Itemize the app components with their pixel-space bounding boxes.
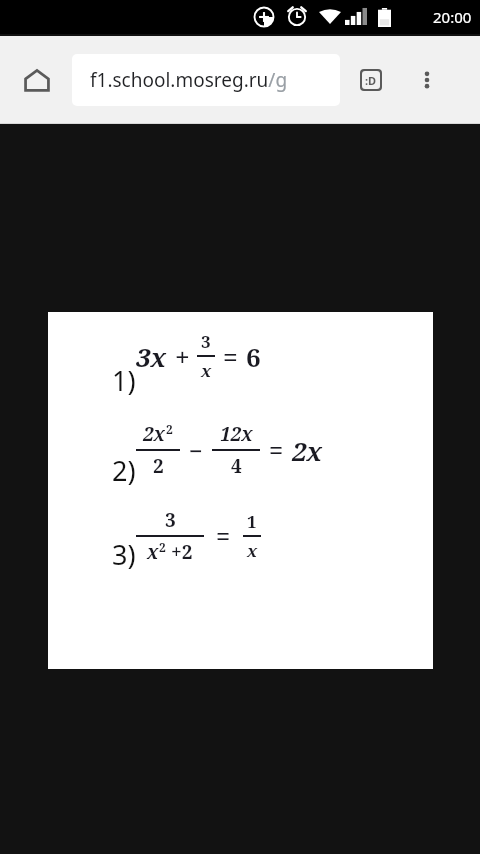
staticText: 12x bbox=[220, 421, 253, 447]
staticText: +2 bbox=[166, 539, 193, 565]
staticText: 6 bbox=[246, 339, 261, 374]
staticText: 2 bbox=[153, 453, 164, 479]
button[interactable]: Reader mode bbox=[347, 56, 395, 104]
staticText: 3 bbox=[201, 330, 211, 353]
staticText: = bbox=[216, 519, 231, 553]
staticText: x bbox=[247, 539, 258, 562]
button[interactable]: 1) bbox=[48, 312, 433, 669]
staticText: :D bbox=[365, 73, 377, 88]
staticText: 2 bbox=[159, 539, 166, 555]
staticText: = bbox=[223, 339, 238, 374]
staticText: = bbox=[269, 433, 284, 467]
staticText: 1 bbox=[247, 510, 257, 533]
staticText: 2x bbox=[292, 433, 323, 468]
staticText: + bbox=[175, 339, 190, 374]
staticText: x bbox=[201, 359, 212, 382]
staticText: 2) bbox=[112, 452, 136, 489]
staticText: 20:00 bbox=[433, 7, 472, 27]
staticText: − bbox=[189, 434, 203, 467]
staticText: f1.school.mosreg.ru/g bbox=[90, 67, 288, 93]
staticText: 3 bbox=[165, 507, 176, 533]
staticText: 3) bbox=[112, 536, 136, 573]
staticText: 3x bbox=[136, 339, 167, 374]
button[interactable]: More options bbox=[403, 56, 451, 104]
staticText: 1) bbox=[112, 362, 136, 399]
button[interactable]: Home bbox=[13, 56, 61, 104]
button[interactable]: f1.school.mosreg.ru/g bbox=[72, 54, 340, 106]
staticText: x bbox=[147, 539, 159, 565]
staticText: 2 bbox=[166, 421, 173, 437]
staticText: 2x bbox=[143, 421, 166, 447]
staticText: 4 bbox=[231, 453, 242, 479]
